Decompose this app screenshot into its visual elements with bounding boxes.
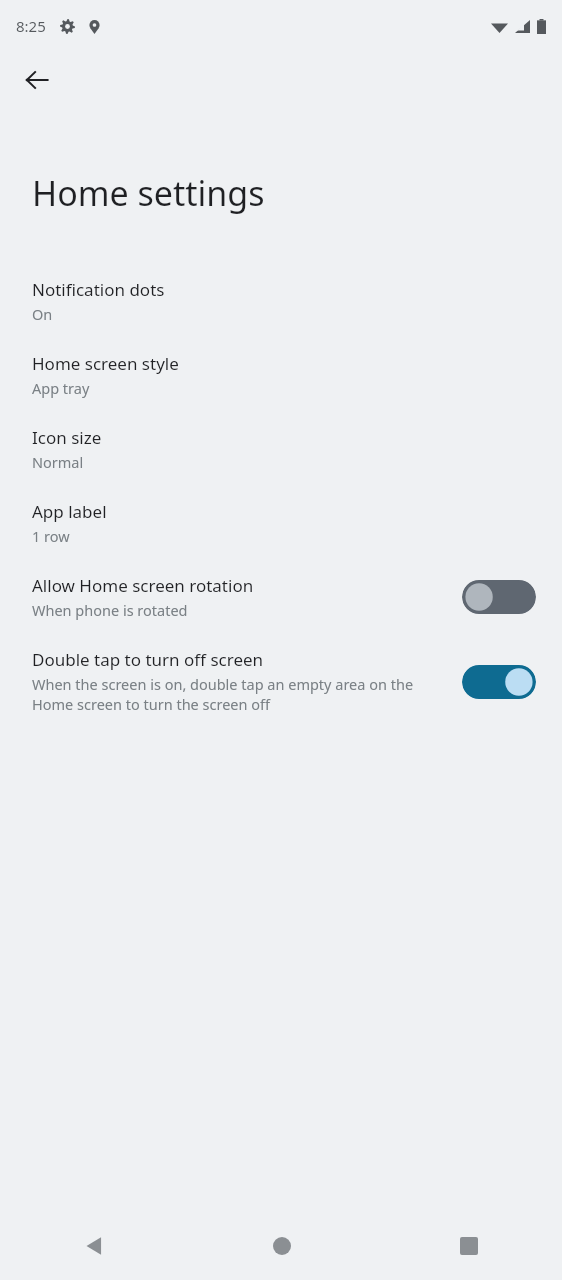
staticText: App tray bbox=[32, 378, 90, 398]
staticText: Allow Home screen rotation bbox=[32, 574, 254, 597]
staticText: Notification dots bbox=[32, 278, 165, 301]
button[interactable]: Icon size bbox=[0, 412, 562, 486]
button[interactable]: Home screen style bbox=[0, 338, 562, 412]
staticText: Double tap to turn off screen bbox=[32, 648, 264, 671]
button[interactable]: Back bbox=[0, 1212, 188, 1280]
button[interactable]: Notification dots bbox=[0, 264, 562, 338]
button[interactable]: Double tap to turn off screen bbox=[0, 634, 562, 729]
staticText: When the screen is on, double tap an emp… bbox=[32, 674, 432, 715]
staticText: App label bbox=[32, 500, 107, 523]
button[interactable]: Off bbox=[462, 579, 536, 615]
staticText: Normal bbox=[32, 452, 84, 472]
button[interactable]: Allow Home screen rotation bbox=[0, 560, 562, 634]
staticText: 1 row bbox=[32, 526, 70, 546]
staticText: When phone is rotated bbox=[32, 600, 188, 620]
staticText: Home settings bbox=[32, 170, 265, 216]
staticText: Icon size bbox=[32, 426, 102, 449]
button[interactable]: Recent apps bbox=[375, 1212, 562, 1280]
button[interactable]: App label bbox=[0, 486, 562, 560]
button[interactable]: Back bbox=[13, 56, 61, 104]
button[interactable]: On bbox=[462, 664, 536, 700]
staticText: On bbox=[32, 304, 53, 324]
staticText: 8:25 bbox=[16, 16, 46, 36]
button[interactable]: Home bbox=[188, 1212, 375, 1280]
staticText: Home screen style bbox=[32, 352, 179, 375]
